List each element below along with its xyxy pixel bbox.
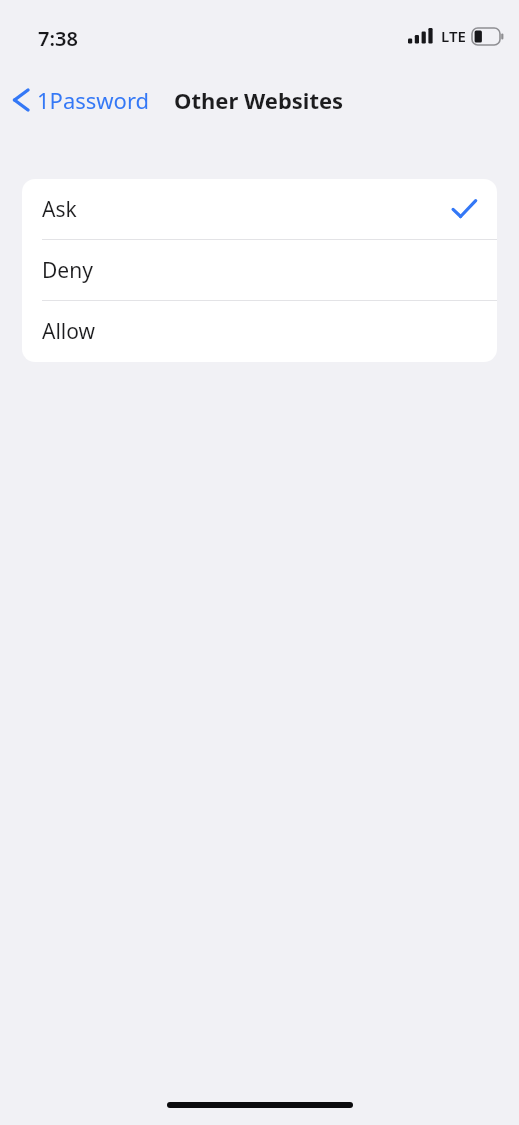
button[interactable]: Ask bbox=[22, 179, 497, 239]
button[interactable]: Allow bbox=[22, 301, 497, 361]
staticText: LTE bbox=[441, 26, 466, 46]
staticText: Allow bbox=[42, 317, 96, 346]
staticText: 7:38 bbox=[38, 25, 78, 52]
staticText: 1Password bbox=[37, 85, 150, 115]
staticText: Ask bbox=[42, 195, 77, 224]
other: Selected bbox=[451, 198, 477, 220]
button[interactable]: Deny bbox=[22, 240, 497, 300]
button[interactable]: Back bbox=[8, 74, 160, 126]
other: Back bbox=[12, 85, 30, 115]
staticText: Deny bbox=[42, 256, 93, 285]
staticText: Other Websites bbox=[174, 85, 344, 115]
